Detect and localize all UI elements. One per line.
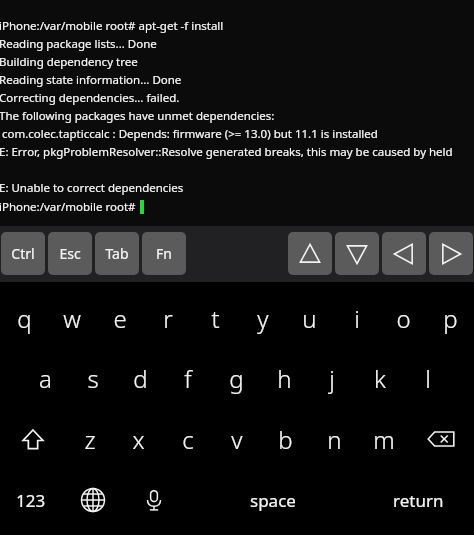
button[interactable]: q bbox=[0, 292, 48, 344]
staticText: com.colec.tapticcalc : Depends: firmware… bbox=[0, 126, 378, 142]
button[interactable]: a bbox=[22, 352, 69, 404]
staticText: i bbox=[354, 302, 360, 335]
button[interactable]: Arrow down bbox=[335, 232, 379, 275]
button[interactable]: Arrow up bbox=[288, 232, 332, 275]
button[interactable]: u bbox=[286, 292, 333, 344]
button[interactable]: h bbox=[260, 352, 308, 404]
staticText: g bbox=[229, 362, 244, 395]
button[interactable]: Tab bbox=[95, 232, 139, 275]
button[interactable]: Voice input bbox=[123, 475, 184, 525]
staticText: 123 bbox=[16, 489, 46, 512]
button[interactable]: k bbox=[356, 352, 404, 404]
staticText: p bbox=[443, 302, 458, 335]
staticText: Correcting dependencies... failed. bbox=[0, 90, 180, 106]
button[interactable]: y bbox=[239, 292, 286, 344]
button[interactable]: z bbox=[65, 413, 114, 465]
button[interactable]: w bbox=[48, 292, 96, 344]
button[interactable]: Arrow left bbox=[382, 232, 426, 275]
staticText: c bbox=[182, 423, 194, 456]
staticText: e bbox=[113, 302, 127, 335]
staticText: space bbox=[250, 489, 296, 512]
staticText: E: Error, pkgProblemResolver::Resolve ge… bbox=[0, 144, 473, 160]
staticText: E: Unable to correct dependencies bbox=[0, 180, 184, 196]
button[interactable]: Shift bbox=[0, 413, 65, 465]
button[interactable]: x bbox=[114, 413, 163, 465]
staticText: Fn bbox=[156, 244, 172, 263]
staticText: x bbox=[132, 423, 145, 456]
staticText: f bbox=[184, 362, 192, 395]
button[interactable]: l bbox=[404, 352, 452, 404]
staticText: m bbox=[373, 423, 395, 456]
button[interactable]: Arrow right bbox=[429, 232, 473, 275]
staticText: The following packages have unmet depend… bbox=[0, 108, 275, 124]
button[interactable]: Change keyboard language bbox=[62, 475, 123, 525]
staticText: v bbox=[231, 423, 243, 456]
button[interactable]: space bbox=[184, 475, 362, 525]
staticText: q bbox=[17, 302, 32, 335]
staticText: w bbox=[63, 302, 81, 335]
button[interactable]: v bbox=[212, 413, 261, 465]
button[interactable]: n bbox=[310, 413, 359, 465]
staticText: r bbox=[163, 302, 173, 335]
button[interactable]: c bbox=[163, 413, 212, 465]
staticText: u bbox=[302, 302, 317, 335]
staticText: Ctrl bbox=[11, 244, 35, 263]
button[interactable]: return bbox=[362, 475, 474, 525]
button[interactable]: Backspace bbox=[408, 413, 474, 465]
staticText: s bbox=[87, 362, 99, 395]
staticText: n bbox=[327, 423, 342, 456]
button[interactable]: t bbox=[192, 292, 239, 344]
button[interactable]: Ctrl bbox=[1, 232, 45, 275]
button[interactable]: g bbox=[212, 352, 260, 404]
button[interactable]: o bbox=[380, 292, 427, 344]
staticText: a bbox=[39, 362, 52, 395]
staticText: o bbox=[396, 302, 411, 335]
staticText: Reading state information... Done bbox=[0, 72, 182, 88]
staticText: l bbox=[425, 362, 431, 395]
button[interactable]: s bbox=[69, 352, 116, 404]
staticText: Building dependency tree bbox=[0, 54, 138, 70]
staticText: h bbox=[277, 362, 292, 395]
button[interactable]: e bbox=[96, 292, 144, 344]
button[interactable]: Esc bbox=[48, 232, 92, 275]
staticText: return bbox=[393, 489, 444, 512]
staticText: d bbox=[133, 362, 148, 395]
button[interactable]: Fn bbox=[142, 232, 186, 275]
button[interactable]: m bbox=[359, 413, 408, 465]
button[interactable]: j bbox=[308, 352, 356, 404]
button[interactable]: f bbox=[164, 352, 212, 404]
staticText: iPhone:/var/mobile root# bbox=[0, 199, 136, 215]
button[interactable]: d bbox=[116, 352, 164, 404]
button[interactable]: 123 bbox=[0, 475, 62, 525]
staticText: Reading package lists... Done bbox=[0, 36, 157, 52]
staticText: z bbox=[84, 423, 96, 456]
staticText: iPhone:/var/mobile root# apt-get -f inst… bbox=[0, 18, 224, 34]
button[interactable]: i bbox=[333, 292, 380, 344]
staticText: j bbox=[329, 362, 335, 395]
staticText: b bbox=[278, 423, 293, 456]
staticText: y bbox=[257, 302, 269, 335]
staticText: Esc bbox=[59, 244, 81, 263]
button[interactable]: b bbox=[261, 413, 310, 465]
button[interactable]: p bbox=[427, 292, 474, 344]
button[interactable]: r bbox=[144, 292, 192, 344]
staticText: Tab bbox=[105, 244, 129, 263]
staticText: t bbox=[211, 302, 220, 335]
staticText: k bbox=[374, 362, 386, 395]
